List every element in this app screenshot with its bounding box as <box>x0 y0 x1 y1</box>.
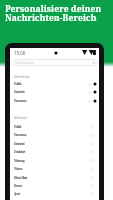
other: Search <box>92 61 96 65</box>
other: Remove <box>88 91 91 94</box>
button[interactable]: Frankfurt <box>10 148 99 156</box>
staticText: Politik <box>14 82 21 86</box>
staticText: Politik <box>14 125 21 129</box>
staticText: Sport <box>14 192 21 196</box>
staticText: Meine Bereiche <box>14 75 30 79</box>
button[interactable]: Panorama <box>10 97 99 105</box>
button[interactable]: Eintracht <box>10 140 99 148</box>
staticText: Eintracht <box>14 90 25 94</box>
staticText: Bereich suchen <box>15 61 34 65</box>
staticText: Meinung <box>14 159 25 163</box>
staticText: Hessen <box>14 184 23 188</box>
other: Add <box>91 133 95 137</box>
other: Reorder <box>93 82 97 86</box>
button[interactable]: Eintracht <box>10 88 99 96</box>
staticText: Rhein-Main <box>14 176 28 180</box>
button[interactable]: Wissen <box>10 165 99 173</box>
button[interactable]: Panorama <box>10 131 99 139</box>
other: Remove <box>88 83 91 86</box>
other: Add <box>91 184 95 188</box>
other: Add <box>91 176 95 180</box>
button[interactable]: Rhein-Main <box>10 174 99 182</box>
button[interactable]: Meinung <box>10 157 99 165</box>
staticText: Eintracht <box>14 142 25 146</box>
button[interactable]: Politik <box>10 80 99 88</box>
staticText: Frankfurt <box>14 150 26 154</box>
button[interactable]: Bereich suchen <box>11 59 98 66</box>
button[interactable]: Politik <box>10 123 99 131</box>
other: Remove <box>88 100 91 103</box>
staticText: Panorama <box>14 133 27 137</box>
staticText: 15:00 <box>14 50 26 56</box>
staticText: Alle Bereiche <box>14 116 27 120</box>
staticText: Panorama <box>14 99 27 103</box>
other: Add <box>91 125 95 129</box>
other: Reorder <box>93 99 97 103</box>
other: Add <box>91 192 95 196</box>
other: Add <box>91 142 95 146</box>
button[interactable]: Sport <box>10 190 99 198</box>
other: Reorder <box>93 90 97 94</box>
staticText: Wissen <box>14 167 23 171</box>
other: Add <box>91 150 95 154</box>
button[interactable]: Hessen <box>10 182 99 190</box>
staticText: Personalisiere deinen Nachrichten-Bereic… <box>5 3 102 23</box>
other: Add <box>91 159 95 163</box>
other: Add <box>91 167 95 171</box>
